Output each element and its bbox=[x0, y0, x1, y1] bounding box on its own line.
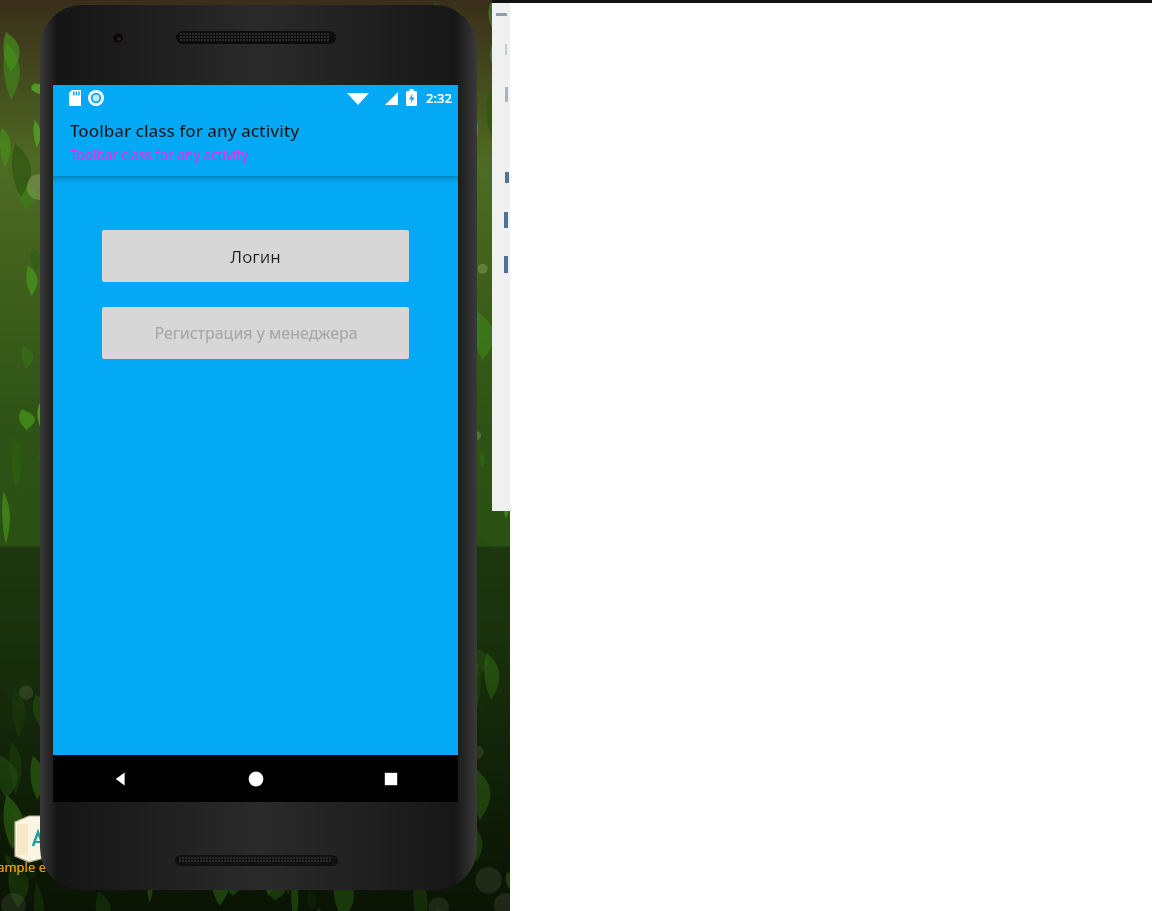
button[interactable]: Home bbox=[188, 755, 323, 802]
staticText: 2:32 bbox=[426, 89, 452, 107]
staticText: Toolbar class for any activity bbox=[70, 119, 300, 142]
staticText: Sample e bbox=[0, 858, 46, 876]
staticText: Логин bbox=[230, 245, 281, 268]
button[interactable]: Recents bbox=[323, 755, 458, 802]
button[interactable]: Логин bbox=[102, 230, 409, 282]
staticText: Регистрация у менеджера bbox=[154, 322, 358, 344]
staticText: Toolbar class for any activity bbox=[70, 146, 249, 164]
button[interactable]: Back bbox=[53, 755, 188, 802]
button[interactable]: Регистрация у менеджера bbox=[102, 307, 409, 359]
